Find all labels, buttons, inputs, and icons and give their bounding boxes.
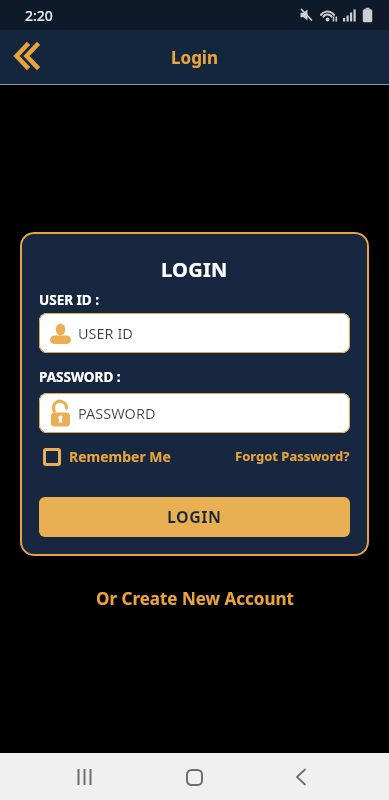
staticText: 2:20 bbox=[25, 6, 53, 25]
button[interactable] bbox=[174, 760, 214, 794]
button[interactable]: Forgot Password? bbox=[235, 447, 350, 465]
staticText: PASSWORD bbox=[78, 403, 156, 423]
button[interactable]: PASSWORD bbox=[39, 393, 350, 433]
button[interactable]: Or Create New Account bbox=[0, 586, 389, 610]
staticText: Remember Me bbox=[69, 447, 171, 466]
staticText: Forgot Password? bbox=[235, 447, 350, 465]
staticText: PASSWORD : bbox=[39, 368, 121, 386]
staticText: USER ID bbox=[78, 323, 133, 343]
staticText: Login bbox=[171, 46, 219, 69]
button[interactable]: LOGIN bbox=[39, 497, 350, 537]
button[interactable] bbox=[281, 760, 321, 794]
staticText: USER ID : bbox=[39, 291, 100, 309]
button[interactable] bbox=[8, 37, 48, 77]
staticText: LOGIN bbox=[167, 506, 222, 528]
button[interactable]: USER ID bbox=[39, 313, 350, 353]
button[interactable]: Remember Me bbox=[43, 447, 171, 466]
staticText: Or Create New Account bbox=[96, 587, 294, 610]
staticText: LOGIN bbox=[161, 256, 228, 283]
button[interactable] bbox=[64, 760, 104, 794]
